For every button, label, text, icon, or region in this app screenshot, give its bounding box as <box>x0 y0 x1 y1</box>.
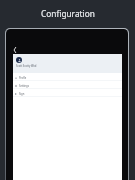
button[interactable]: Back <box>11 46 18 53</box>
staticText: Scott Scotty Wod <box>16 64 37 68</box>
staticText: Configuration <box>41 8 95 19</box>
button[interactable]: Profle <box>13 73 122 81</box>
button[interactable]: Sign <box>13 89 122 97</box>
staticText: Profle <box>19 76 27 80</box>
button[interactable]: Settings <box>13 81 122 89</box>
staticText: Sign <box>19 92 25 96</box>
staticText: Settings <box>19 84 29 88</box>
